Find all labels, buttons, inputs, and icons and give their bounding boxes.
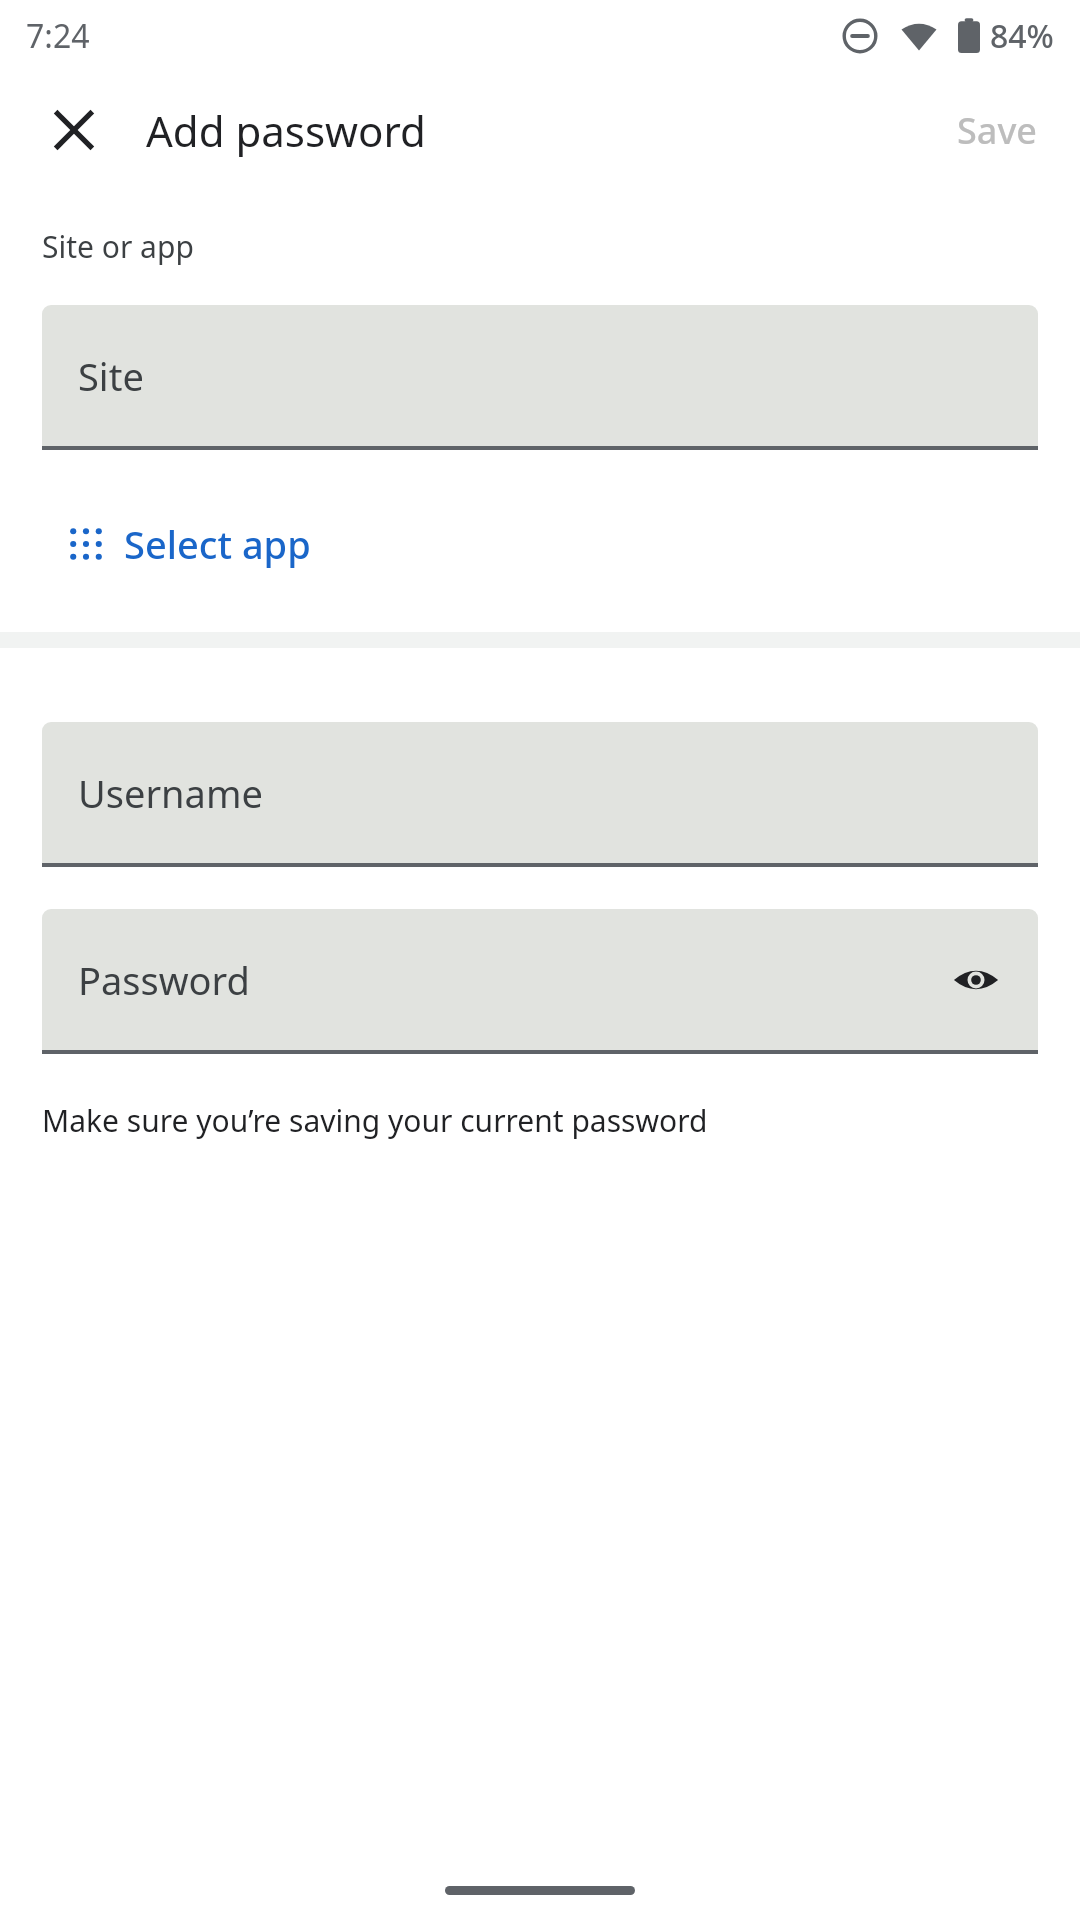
staticText: Add password: [146, 102, 426, 159]
button[interactable]: Select app: [56, 508, 323, 580]
staticText: Username: [78, 767, 263, 819]
button[interactable]: Show password: [938, 942, 1014, 1018]
button[interactable]: Username: [42, 722, 1038, 867]
staticText: 84%: [990, 14, 1054, 58]
staticText: Select app: [124, 518, 311, 570]
staticText: Save: [957, 106, 1038, 155]
staticText: Password: [78, 954, 250, 1006]
button[interactable]: Close: [38, 94, 110, 166]
staticText: Make sure you’re saving your current pas…: [42, 1100, 708, 1141]
staticText: Site or app: [42, 226, 194, 267]
button[interactable]: Site: [42, 305, 1038, 450]
button[interactable]: Save: [933, 92, 1062, 169]
staticText: Site: [78, 350, 144, 402]
button[interactable]: Password: [42, 909, 1038, 1054]
staticText: 7:24: [26, 14, 90, 58]
